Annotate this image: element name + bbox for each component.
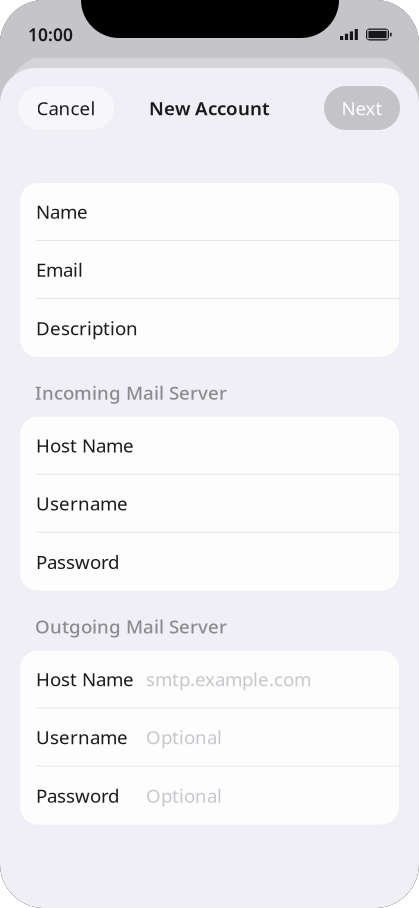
staticText: Password — [36, 783, 119, 808]
staticText: Email — [36, 257, 83, 282]
staticText: Optional — [146, 783, 222, 808]
staticText: Outgoing Mail Server — [35, 614, 227, 639]
staticText: smtp.example.com — [146, 667, 311, 691]
staticText: Next — [341, 96, 382, 120]
button[interactable]: Cancel — [18, 86, 114, 129]
staticText: Name — [36, 199, 88, 224]
staticText: Username — [36, 725, 128, 749]
staticText: Optional — [146, 725, 222, 749]
staticText: Password — [36, 549, 119, 574]
staticText: Cancel — [36, 96, 95, 120]
staticText: Host Name — [36, 667, 134, 691]
staticText: Host Name — [36, 433, 134, 458]
staticText: Incoming Mail Server — [35, 380, 227, 405]
staticText: 10:00 — [28, 23, 73, 46]
staticText: New Account — [149, 96, 270, 120]
staticText: Description — [36, 316, 138, 340]
staticText: Username — [36, 491, 128, 516]
button[interactable]: Next — [324, 86, 400, 130]
